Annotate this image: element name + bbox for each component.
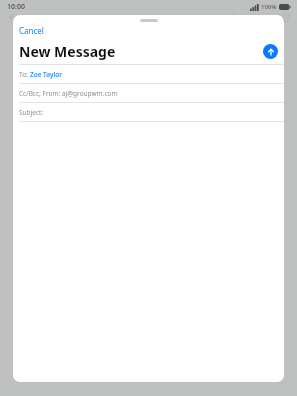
staticText: 100% (261, 3, 277, 11)
staticText: To: (19, 70, 30, 79)
staticText: 10:00 (7, 2, 25, 12)
button[interactable]: Cancel (13, 23, 50, 38)
button[interactable]: To: (13, 65, 284, 83)
staticText: Zoe Taylor (30, 70, 62, 79)
staticText: Subject: (19, 108, 44, 117)
button[interactable]: Send (263, 44, 278, 59)
button[interactable]: Cc/Bcc, From: aj@groupwm.com (13, 84, 284, 102)
staticText: Cc/Bcc, From: aj@groupwm.com (19, 89, 118, 98)
staticText: Cancel (19, 25, 44, 36)
button[interactable]: Subject: (13, 103, 284, 121)
staticText: New Message (19, 42, 116, 61)
